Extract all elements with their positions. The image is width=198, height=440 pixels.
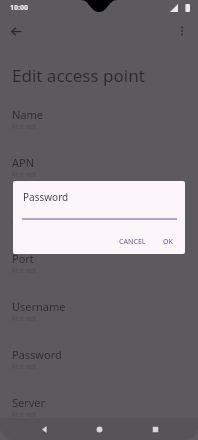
staticText: CANCEL — [119, 237, 146, 247]
staticText: Edit access point — [12, 64, 145, 87]
button[interactable]: Password — [0, 342, 198, 377]
staticText: Not set — [12, 410, 36, 420]
button[interactable]: Username — [0, 294, 198, 329]
staticText: OK — [163, 237, 173, 247]
button[interactable]: Port — [0, 246, 198, 281]
staticText: Username — [12, 299, 66, 314]
staticText: Not set — [12, 122, 36, 132]
button[interactable]: Home — [87, 418, 111, 440]
staticText: 10:00 — [10, 3, 28, 13]
staticText: Server — [12, 395, 46, 410]
button[interactable]: APN — [0, 150, 198, 185]
button[interactable]: Recents — [143, 418, 167, 440]
button[interactable]: Back — [32, 418, 56, 440]
staticText: Name — [12, 107, 44, 122]
button[interactable]: OK — [156, 233, 180, 251]
staticText: Not set — [12, 362, 36, 372]
button[interactable]: CANCEL — [113, 233, 152, 251]
button[interactable]: More options — [170, 19, 194, 43]
staticText: APN — [12, 155, 35, 170]
staticText: Not set — [12, 170, 36, 180]
button[interactable]: Back — [4, 19, 28, 43]
staticText: Password — [12, 347, 62, 362]
staticText: Not set — [12, 314, 36, 324]
staticText: Port — [12, 251, 34, 266]
staticText: Not set — [12, 218, 36, 228]
button[interactable]: Name — [0, 102, 198, 137]
staticText: Password — [23, 190, 69, 204]
staticText: Not set — [12, 266, 36, 276]
staticText: Proxy — [12, 203, 41, 218]
button[interactable]: Proxy — [0, 198, 198, 233]
button[interactable] — [22, 209, 177, 225]
button[interactable]: Server — [0, 390, 198, 425]
